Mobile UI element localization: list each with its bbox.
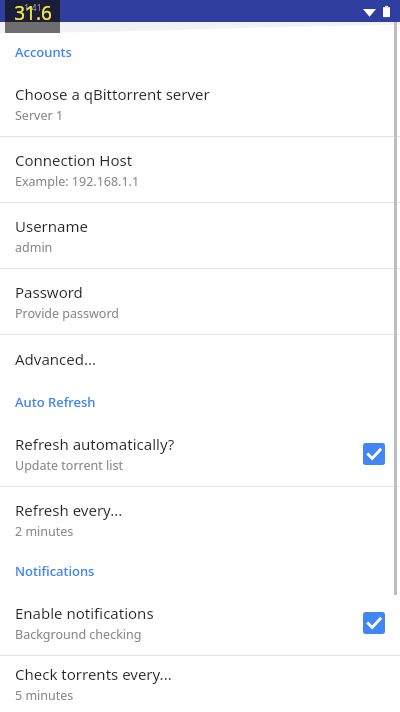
staticText: 2 minutes [15,523,74,540]
staticText: Update torrent list [15,457,123,474]
staticText: Notifications [15,562,95,580]
staticText: 31.6 [14,0,52,22]
button[interactable]: Choose a qBittorrent server [0,71,400,136]
staticText: Choose a qBittorrent server [15,84,210,104]
staticText: Enable notifications [15,603,154,623]
staticText: Password [15,282,83,302]
button[interactable]: Connection Host [0,137,400,202]
button[interactable]: Check torrents every... [0,656,400,712]
other: Checked [363,443,385,465]
other: Checked [363,612,385,634]
staticText: Provide password [15,305,120,322]
staticText: Background checking [15,626,142,643]
staticText: Advanced... [15,349,97,369]
staticText: Refresh every... [15,500,123,520]
staticText: Auto Refresh [15,393,96,411]
staticText: Refresh automatically? [15,434,175,454]
button[interactable]: Username [0,203,400,268]
staticText: Check torrents every... [15,664,172,684]
staticText: admin [15,239,53,256]
button[interactable]: Advanced... [0,335,400,383]
staticText: Accounts [15,43,72,61]
staticText: 1:41 [24,1,42,13]
button[interactable]: Refresh every... [0,487,400,552]
staticText: Username [15,216,88,236]
staticText: 5 minutes [15,687,74,704]
staticText: Connection Host [15,150,133,170]
button[interactable]: Enable notifications [0,590,400,655]
button[interactable]: Password [0,269,400,334]
staticText: Example: 192.168.1.1 [15,173,140,190]
staticText: Server 1 [15,107,64,124]
button[interactable]: Refresh automatically? [0,421,400,486]
